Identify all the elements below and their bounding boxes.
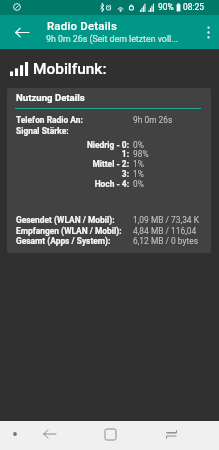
staticText: Mittel - 2:: [11, 159, 129, 169]
staticText: Gesamt (Apps / System):: [16, 236, 111, 246]
staticText: 1,09 MB / 73,34 K: [133, 215, 199, 225]
staticText: 9h 0m 26s: [133, 115, 173, 125]
staticText: 90%: [158, 2, 174, 12]
button[interactable]: Back: [0, 15, 44, 49]
staticText: 3:: [11, 169, 129, 179]
staticText: Hoch - 4:: [11, 179, 129, 189]
staticText: Niedrig - 0:: [11, 140, 129, 150]
staticText: 6,12 MB / 0 bytes: [133, 236, 199, 246]
staticText: 1%: [133, 159, 144, 169]
staticText: Empfangen (WLAN / Mobil):: [16, 226, 122, 236]
button[interactable]: Menu: [6, 425, 24, 443]
staticText: 98%: [133, 149, 149, 159]
staticText: Signal Stärke:: [16, 126, 69, 136]
button[interactable]: Back: [39, 424, 59, 444]
staticText: 08:25: [183, 2, 204, 12]
staticText: 0%: [133, 179, 144, 189]
button[interactable]: Recents: [161, 424, 181, 444]
button[interactable]: More options: [197, 15, 219, 49]
staticText: Gesendet (WLAN / Mobil):: [16, 215, 115, 225]
staticText: 1%: [133, 169, 144, 179]
staticText: Telefon Radio An:: [16, 115, 83, 125]
staticText: 4,84 MB / 116,04: [133, 226, 197, 236]
staticText: Mobilfunk:: [33, 60, 107, 78]
button[interactable]: Home: [100, 424, 120, 444]
staticText: Radio Details: [47, 19, 118, 32]
staticText: 0%: [133, 140, 144, 150]
staticText: 9h 0m 26s (Seit dem letzten voll...: [46, 34, 179, 44]
staticText: 1:: [11, 149, 129, 159]
staticText: Nutzung Details: [16, 92, 85, 103]
